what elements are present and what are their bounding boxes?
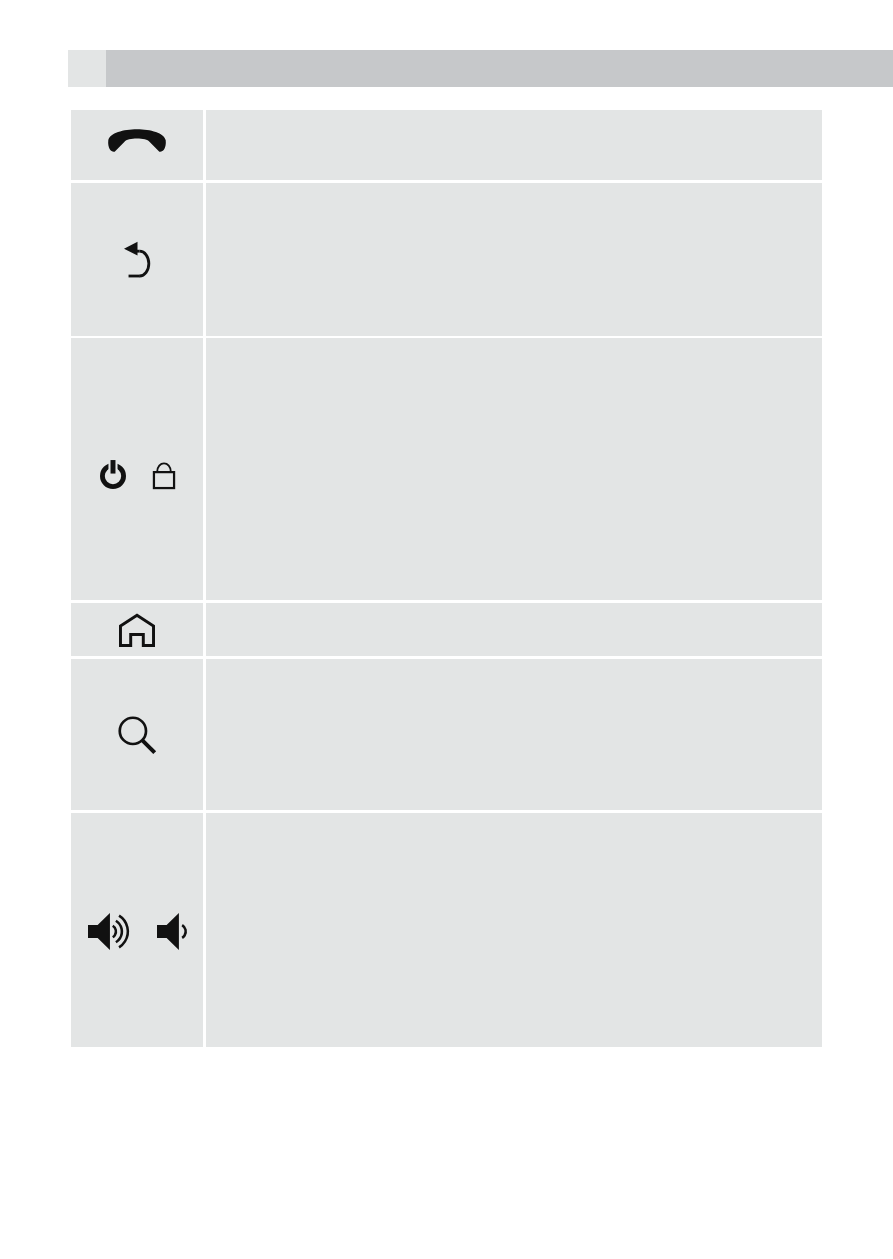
other: Volume down [157, 911, 187, 952]
other: Home [119, 613, 155, 647]
button[interactable]: Search key [71, 659, 203, 810]
button[interactable]: Home key [71, 603, 203, 656]
other: End call [108, 126, 166, 152]
button[interactable]: Back key [71, 183, 203, 336]
button[interactable]: End call key [71, 110, 203, 180]
button[interactable]: Power and lock keys [71, 338, 203, 600]
button[interactable]: Volume keys [71, 813, 203, 1047]
other: Lock [153, 462, 175, 489]
other: Search [119, 717, 156, 754]
other: Power [100, 459, 126, 489]
other: Volume up [88, 911, 129, 952]
other: Back [124, 242, 150, 278]
